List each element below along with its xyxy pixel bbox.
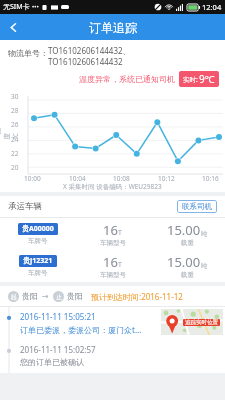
- staticText: 16: [103, 253, 118, 271]
- staticText: 物流单号：: [8, 48, 48, 58]
- staticText: 20: [11, 163, 19, 172]
- staticText: 10:00: [24, 174, 41, 183]
- staticText: 2016-11-11 15:02:57: [20, 344, 96, 355]
- button[interactable]: 2016-11-11 15:02:57: [0, 340, 225, 373]
- staticText: 吨: [201, 262, 208, 270]
- staticText: 28: [11, 106, 19, 115]
- staticText: Y 温度℃: [0, 127, 19, 139]
- staticText: X 采集时间 设备编码：WEU29823: [63, 182, 162, 191]
- staticText: 16: [103, 221, 118, 239]
- staticText: 预计到达时间:2016-11-12: [91, 291, 183, 302]
- staticText: 9℃: [199, 72, 215, 86]
- button[interactable]: 贵J12321: [0, 250, 225, 282]
- staticText: 您的订单已被确认: [20, 357, 84, 367]
- staticText: 10:04: [69, 174, 86, 183]
- staticText: 10:08: [113, 174, 130, 183]
- staticText: 贵J12321: [23, 256, 53, 266]
- button[interactable]: 联系司机: [182, 202, 212, 211]
- button[interactable]: 实时:: [183, 72, 215, 86]
- staticText: 2016-11-11 15:05:21: [20, 311, 96, 322]
- staticText: 车辆型号: [100, 271, 126, 279]
- staticText: 承运车辆: [8, 201, 42, 212]
- staticText: 无SIM卡: [3, 2, 30, 12]
- staticText: 贵阳: [67, 291, 83, 301]
- staticText: 26: [11, 120, 19, 129]
- staticText: 载重: [181, 271, 194, 279]
- staticText: 贵A00000: [22, 224, 54, 234]
- button[interactable]: 追踪实时位置: [161, 309, 223, 335]
- staticText: 吨: [201, 230, 208, 238]
- staticText: TO16102606144432、: [48, 45, 131, 56]
- staticText: 车牌号: [28, 269, 48, 277]
- staticText: 贵阳: [22, 291, 38, 301]
- staticText: 30: [11, 92, 19, 101]
- staticText: TO16102606144432: [48, 56, 123, 67]
- staticText: 追踪实时位置: [185, 319, 218, 326]
- staticText: 15.00: [167, 253, 201, 271]
- staticText: 10:12: [158, 174, 175, 183]
- staticText: •••: [32, 3, 39, 11]
- staticText: 12:04: [202, 2, 222, 12]
- staticText: 24: [11, 135, 19, 144]
- staticText: 车牌号: [28, 237, 48, 245]
- staticText: →: [42, 292, 49, 301]
- staticText: 联系司机: [182, 202, 212, 211]
- button[interactable]: 贵A00000: [0, 218, 225, 250]
- staticText: 车辆型号: [100, 239, 126, 247]
- button[interactable]: 返回: [0, 14, 26, 40]
- staticText: T: [118, 260, 122, 270]
- staticText: 起: [11, 293, 17, 301]
- staticText: 22: [11, 149, 19, 158]
- staticText: 实时:: [183, 75, 198, 84]
- staticText: 温度异常，系统已通知司机: [79, 74, 175, 84]
- button[interactable]: 2016-11-11 15:05:21: [0, 307, 225, 340]
- staticText: 止: [56, 293, 62, 301]
- staticText: 载重: [181, 239, 194, 247]
- staticText: 10:16: [202, 174, 219, 183]
- staticText: T: [118, 228, 122, 238]
- staticText: 订单追踪: [89, 20, 137, 35]
- staticText: 15.00: [167, 221, 201, 239]
- staticText: 订单已委派，委派公司：厦门众t…: [20, 324, 142, 335]
